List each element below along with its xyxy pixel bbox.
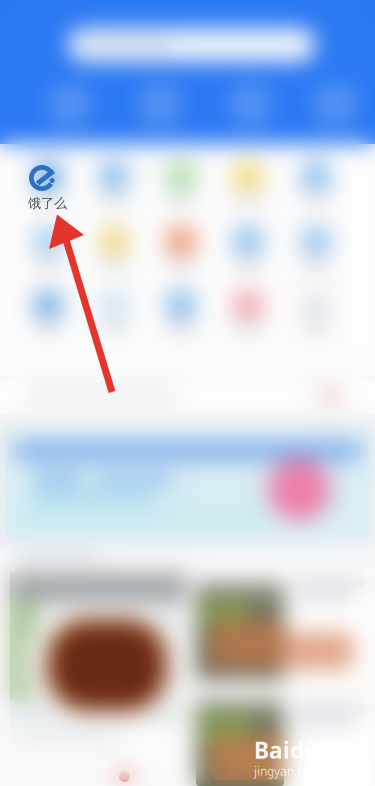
staticText: 饿了么 [28, 195, 67, 211]
staticText: jingyan.baidu.com [254, 763, 355, 779]
staticText: Baidu [254, 735, 319, 765]
button[interactable]: 饿了么 [28, 162, 98, 211]
